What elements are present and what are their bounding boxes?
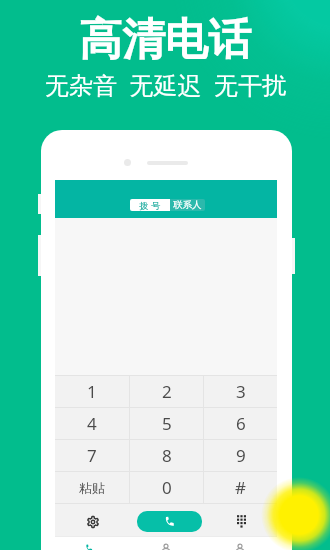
button[interactable]: 9 (204, 440, 277, 471)
button[interactable]: Settings (71, 506, 115, 538)
staticText: 4 (87, 412, 97, 435)
button[interactable]: 拨 号 (130, 199, 170, 211)
staticText: 8 (162, 444, 172, 467)
button[interactable]: Keypad (219, 503, 263, 535)
staticText: 6 (236, 412, 246, 435)
button[interactable]: 5 (130, 408, 203, 439)
staticText: 无杂音 无延迟 无干扰 (45, 68, 286, 101)
staticText: 0 (162, 476, 172, 499)
button[interactable]: Contacts (144, 537, 188, 550)
button[interactable]: 粘贴 (55, 472, 129, 503)
button[interactable]: 8 (130, 440, 203, 471)
staticText: # (235, 476, 246, 499)
button[interactable]: 2 (130, 376, 203, 407)
button[interactable]: Me (218, 537, 262, 550)
button[interactable]: 联系人 (170, 199, 205, 211)
button[interactable]: 6 (204, 408, 277, 439)
staticText: 3 (236, 380, 246, 403)
staticText: 粘贴 (79, 480, 105, 496)
staticText: 9 (236, 444, 246, 467)
staticText: 7 (87, 444, 97, 467)
button[interactable]: Call (137, 511, 202, 532)
button[interactable]: 7 (55, 440, 129, 471)
button[interactable]: 0 (130, 472, 203, 503)
staticText: 联系人 (173, 199, 202, 211)
button[interactable]: 1 (55, 376, 129, 407)
button[interactable]: 3 (204, 376, 277, 407)
button[interactable]: # (204, 472, 277, 503)
staticText: 高清电话 (79, 13, 251, 67)
staticText: 5 (162, 412, 172, 435)
button[interactable]: Dial (67, 537, 111, 550)
staticText: 2 (162, 380, 172, 403)
staticText: 1 (87, 380, 97, 403)
button[interactable]: 4 (55, 408, 129, 439)
staticText: 拨 号 (139, 199, 161, 211)
